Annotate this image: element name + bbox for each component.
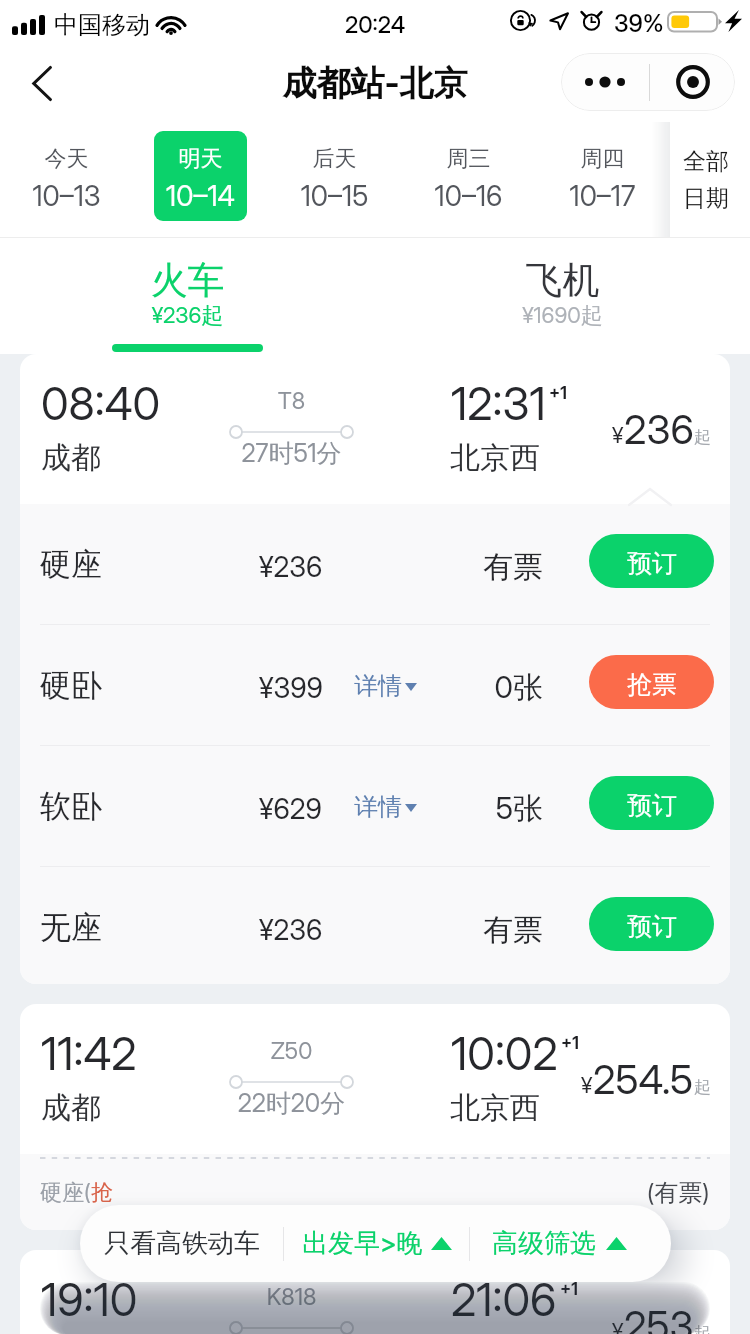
staticText: T8 [172,387,411,415]
staticText: 全部 [666,147,746,176]
staticText: 周四 [556,145,649,173]
staticText: Z50 [172,1037,411,1065]
staticText: 今天 [20,145,113,173]
staticText: ¥236 [259,913,323,947]
staticText: 飞机 [375,257,750,304]
staticText: 20:24 [345,11,406,39]
staticText: 起 [694,1323,711,1334]
staticText: (有票) [647,1178,710,1208]
staticText: ¥ [612,422,624,449]
staticText: 火车 [0,257,375,304]
button[interactable]: 周四 [556,131,649,221]
button[interactable]: More options [561,53,735,111]
staticText: 硬座( [40,1179,91,1207]
button[interactable]: 出发早>晚 [284,1205,469,1282]
staticText: ¥236 [259,550,323,584]
staticText: ¥ [612,1318,624,1334]
staticText: 253 [624,1301,694,1334]
staticText: 11:42 [41,1026,137,1080]
staticText: 硬座 [40,545,102,584]
staticText: 抢 [91,1179,113,1207]
button[interactable]: 只看高铁动车 [80,1205,283,1282]
staticText: 10–15 [288,179,381,213]
staticText: 22时20分 [172,1088,411,1120]
staticText: 详情 [354,792,402,822]
button[interactable]: 软卧 [20,746,730,866]
button[interactable]: 高级筛选 [470,1205,671,1282]
button[interactable]: 火车 [0,239,375,354]
staticText: 日期 [666,184,746,213]
staticText: 预订 [627,911,677,942]
staticText: 起 [694,1077,711,1098]
staticText: 详情 [354,671,402,701]
staticText: +1 [549,383,567,404]
staticText: 预订 [627,548,677,579]
staticText: 21:06 [451,1272,557,1326]
staticText: ¥ [581,1072,593,1099]
button[interactable]: 硬卧 [20,625,730,745]
button[interactable]: 预订 [589,534,714,588]
button[interactable]: 详情 [354,792,417,822]
staticText: ¥399 [259,671,323,705]
staticText: 出发早>晚 [302,1227,423,1260]
staticText: ¥1690起 [375,302,750,330]
staticText: 无座 [40,908,102,947]
staticText: 起 [694,427,711,448]
staticText: +1 [561,1033,579,1054]
staticText: 后天 [288,145,381,173]
staticText: 5张 [423,790,543,828]
staticText: 27时51分 [172,438,411,470]
staticText: 10:02 [451,1026,558,1080]
button[interactable]: 硬座 [20,504,730,624]
staticText: 成都 [41,439,101,477]
staticText: 10–17 [556,179,649,213]
staticText: 10–16 [422,179,515,213]
staticText: 成都站-北京 [0,62,750,105]
staticText: 成都 [41,1089,101,1127]
staticText: 19:10 [41,1272,138,1326]
button[interactable]: 抢票 [589,655,714,709]
staticText: 硬卧 [40,666,102,705]
staticText: 高级筛选 [492,1227,596,1260]
staticText: 10–13 [20,179,113,213]
staticText: 只看高铁动车 [104,1227,260,1260]
staticText: +1 [560,1279,578,1300]
button[interactable]: Back [14,56,69,111]
staticText: 抢票 [627,669,677,700]
button[interactable]: 飞机 [375,239,750,354]
button[interactable]: 预订 [589,776,714,830]
button[interactable]: 周三 [422,131,515,221]
staticText: 预订 [627,790,677,821]
staticText: 12:31 [451,376,546,430]
staticText: 有票 [423,911,543,949]
button[interactable]: 明天 [154,131,247,221]
button[interactable]: 详情 [354,671,417,701]
staticText: 周三 [422,145,515,173]
staticText: 10–14 [154,179,247,213]
staticText: 北京西 [450,439,540,477]
staticText: 北京西 [450,1089,540,1127]
staticText: 39% [614,9,664,38]
button[interactable]: 无座 [20,867,730,984]
staticText: 明天 [154,145,247,173]
button[interactable]: 后天 [288,131,381,221]
staticText: ¥629 [259,792,322,826]
staticText: 中国移动 [54,10,150,40]
staticText: K818 [172,1283,411,1311]
button[interactable]: 预订 [589,897,714,951]
staticText: 236 [624,405,694,453]
staticText: 0张 [423,669,543,707]
staticText: 软卧 [40,787,102,826]
staticText: 有票 [423,548,543,586]
staticText: 254.5 [593,1055,694,1103]
button[interactable]: 今天 [20,131,113,221]
button[interactable]: 全部 [670,122,750,238]
staticText: ¥236起 [0,302,375,330]
staticText: 08:40 [41,376,161,430]
